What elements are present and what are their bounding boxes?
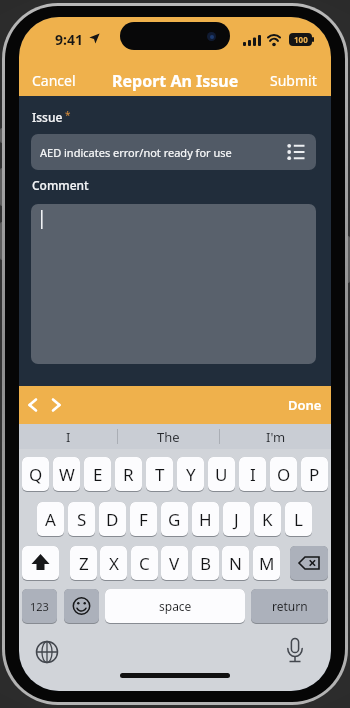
- button[interactable]: B: [192, 546, 219, 580]
- button[interactable]: X: [100, 546, 127, 580]
- staticText: Report An Issue: [112, 70, 239, 92]
- button[interactable]: AED indicates error/not ready for use: [31, 134, 316, 170]
- button[interactable]: U: [208, 457, 235, 491]
- button[interactable]: C: [131, 546, 158, 580]
- staticText: P: [309, 463, 320, 486]
- button[interactable]: [22, 546, 59, 580]
- button[interactable]: L: [285, 502, 312, 536]
- staticText: R: [123, 463, 134, 486]
- button[interactable]: D: [99, 502, 126, 536]
- staticText: F: [139, 508, 148, 531]
- button[interactable]: [285, 638, 305, 666]
- staticText: H: [199, 508, 212, 531]
- staticText: Cancel: [32, 71, 76, 90]
- button[interactable]: [51, 399, 61, 411]
- button[interactable]: Submit: [241, 70, 331, 92]
- button[interactable]: Q: [22, 457, 49, 491]
- button[interactable]: I'm: [220, 424, 331, 449]
- button[interactable]: Y: [177, 457, 204, 491]
- staticText: I'm: [266, 428, 286, 446]
- staticText: I: [250, 463, 256, 486]
- button[interactable]: G: [161, 502, 188, 536]
- staticText: V: [169, 552, 180, 575]
- staticText: A: [45, 508, 56, 531]
- button[interactable]: H: [192, 502, 219, 536]
- staticText: Submit: [270, 71, 317, 90]
- staticText: 100: [294, 34, 308, 45]
- button[interactable]: W: [53, 457, 80, 491]
- button[interactable]: [28, 399, 38, 411]
- staticText: space: [159, 598, 192, 614]
- staticText: C: [139, 552, 150, 575]
- staticText: D: [106, 508, 119, 531]
- staticText: J: [234, 508, 239, 531]
- button[interactable]: P: [301, 457, 328, 491]
- button[interactable]: [31, 204, 316, 364]
- button[interactable]: F: [130, 502, 157, 536]
- button[interactable]: N: [222, 546, 249, 580]
- button[interactable]: space: [105, 589, 245, 623]
- staticText: T: [155, 463, 165, 486]
- staticText: AED indicates error/not ready for use: [40, 145, 232, 160]
- staticText: O: [277, 463, 291, 486]
- staticText: Comment: [32, 177, 89, 193]
- button[interactable]: Done: [269, 386, 331, 424]
- staticText: I: [66, 428, 71, 446]
- button[interactable]: K: [254, 502, 281, 536]
- staticText: Issue: [32, 109, 63, 125]
- button[interactable]: [290, 546, 328, 580]
- button[interactable]: [35, 640, 59, 664]
- staticText: N: [229, 552, 242, 575]
- staticText: The: [157, 428, 180, 446]
- staticText: W: [59, 463, 75, 486]
- button[interactable]: 123: [22, 589, 57, 623]
- button[interactable]: E: [84, 457, 111, 491]
- button[interactable]: J: [223, 502, 250, 536]
- staticText: Z: [79, 552, 89, 575]
- button[interactable]: I: [239, 457, 266, 491]
- staticText: K: [262, 508, 273, 531]
- button[interactable]: [64, 589, 99, 623]
- button[interactable]: return: [251, 589, 328, 623]
- staticText: Y: [186, 463, 196, 486]
- staticText: E: [93, 463, 103, 486]
- staticText: 9:41: [55, 30, 83, 49]
- button[interactable]: T: [146, 457, 173, 491]
- staticText: return: [272, 598, 308, 614]
- staticText: Q: [29, 463, 43, 486]
- button[interactable]: Z: [70, 546, 97, 580]
- button[interactable]: V: [161, 546, 188, 580]
- button[interactable]: I: [19, 424, 117, 449]
- staticText: *: [65, 108, 71, 122]
- button[interactable]: O: [270, 457, 297, 491]
- staticText: U: [215, 463, 228, 486]
- staticText: L: [294, 508, 303, 531]
- staticText: 123: [30, 599, 49, 614]
- staticText: X: [109, 552, 119, 575]
- button[interactable]: M: [253, 546, 280, 580]
- button[interactable]: Cancel: [19, 70, 79, 92]
- button[interactable]: A: [37, 502, 64, 536]
- button[interactable]: R: [115, 457, 142, 491]
- staticText: M: [259, 552, 275, 575]
- staticText: G: [168, 508, 181, 531]
- button[interactable]: The: [118, 424, 219, 449]
- staticText: B: [200, 552, 212, 575]
- staticText: S: [77, 508, 87, 531]
- staticText: Done: [288, 396, 322, 414]
- button[interactable]: S: [68, 502, 95, 536]
